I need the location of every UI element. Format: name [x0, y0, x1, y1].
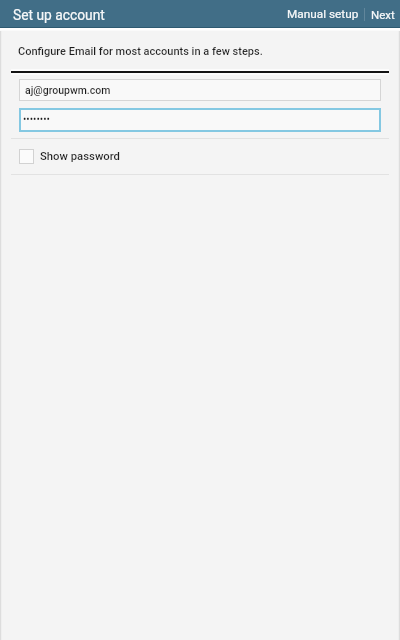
- button[interactable]: Show password: [0, 139, 400, 174]
- staticText: aj@groupwm.com: [25, 84, 111, 96]
- button[interactable]: Manual setup: [282, 0, 364, 28]
- staticText: Set up account: [13, 7, 105, 23]
- button[interactable]: Next: [365, 0, 400, 28]
- staticText: Show password: [40, 150, 120, 163]
- staticText: Next: [371, 8, 395, 21]
- button[interactable]: Email address: [19, 79, 381, 101]
- button[interactable]: Password: [19, 108, 381, 132]
- staticText: Configure Email for most accounts in a f…: [18, 45, 263, 58]
- staticText: Manual setup: [287, 7, 359, 21]
- staticText: ••••••••: [23, 114, 50, 126]
